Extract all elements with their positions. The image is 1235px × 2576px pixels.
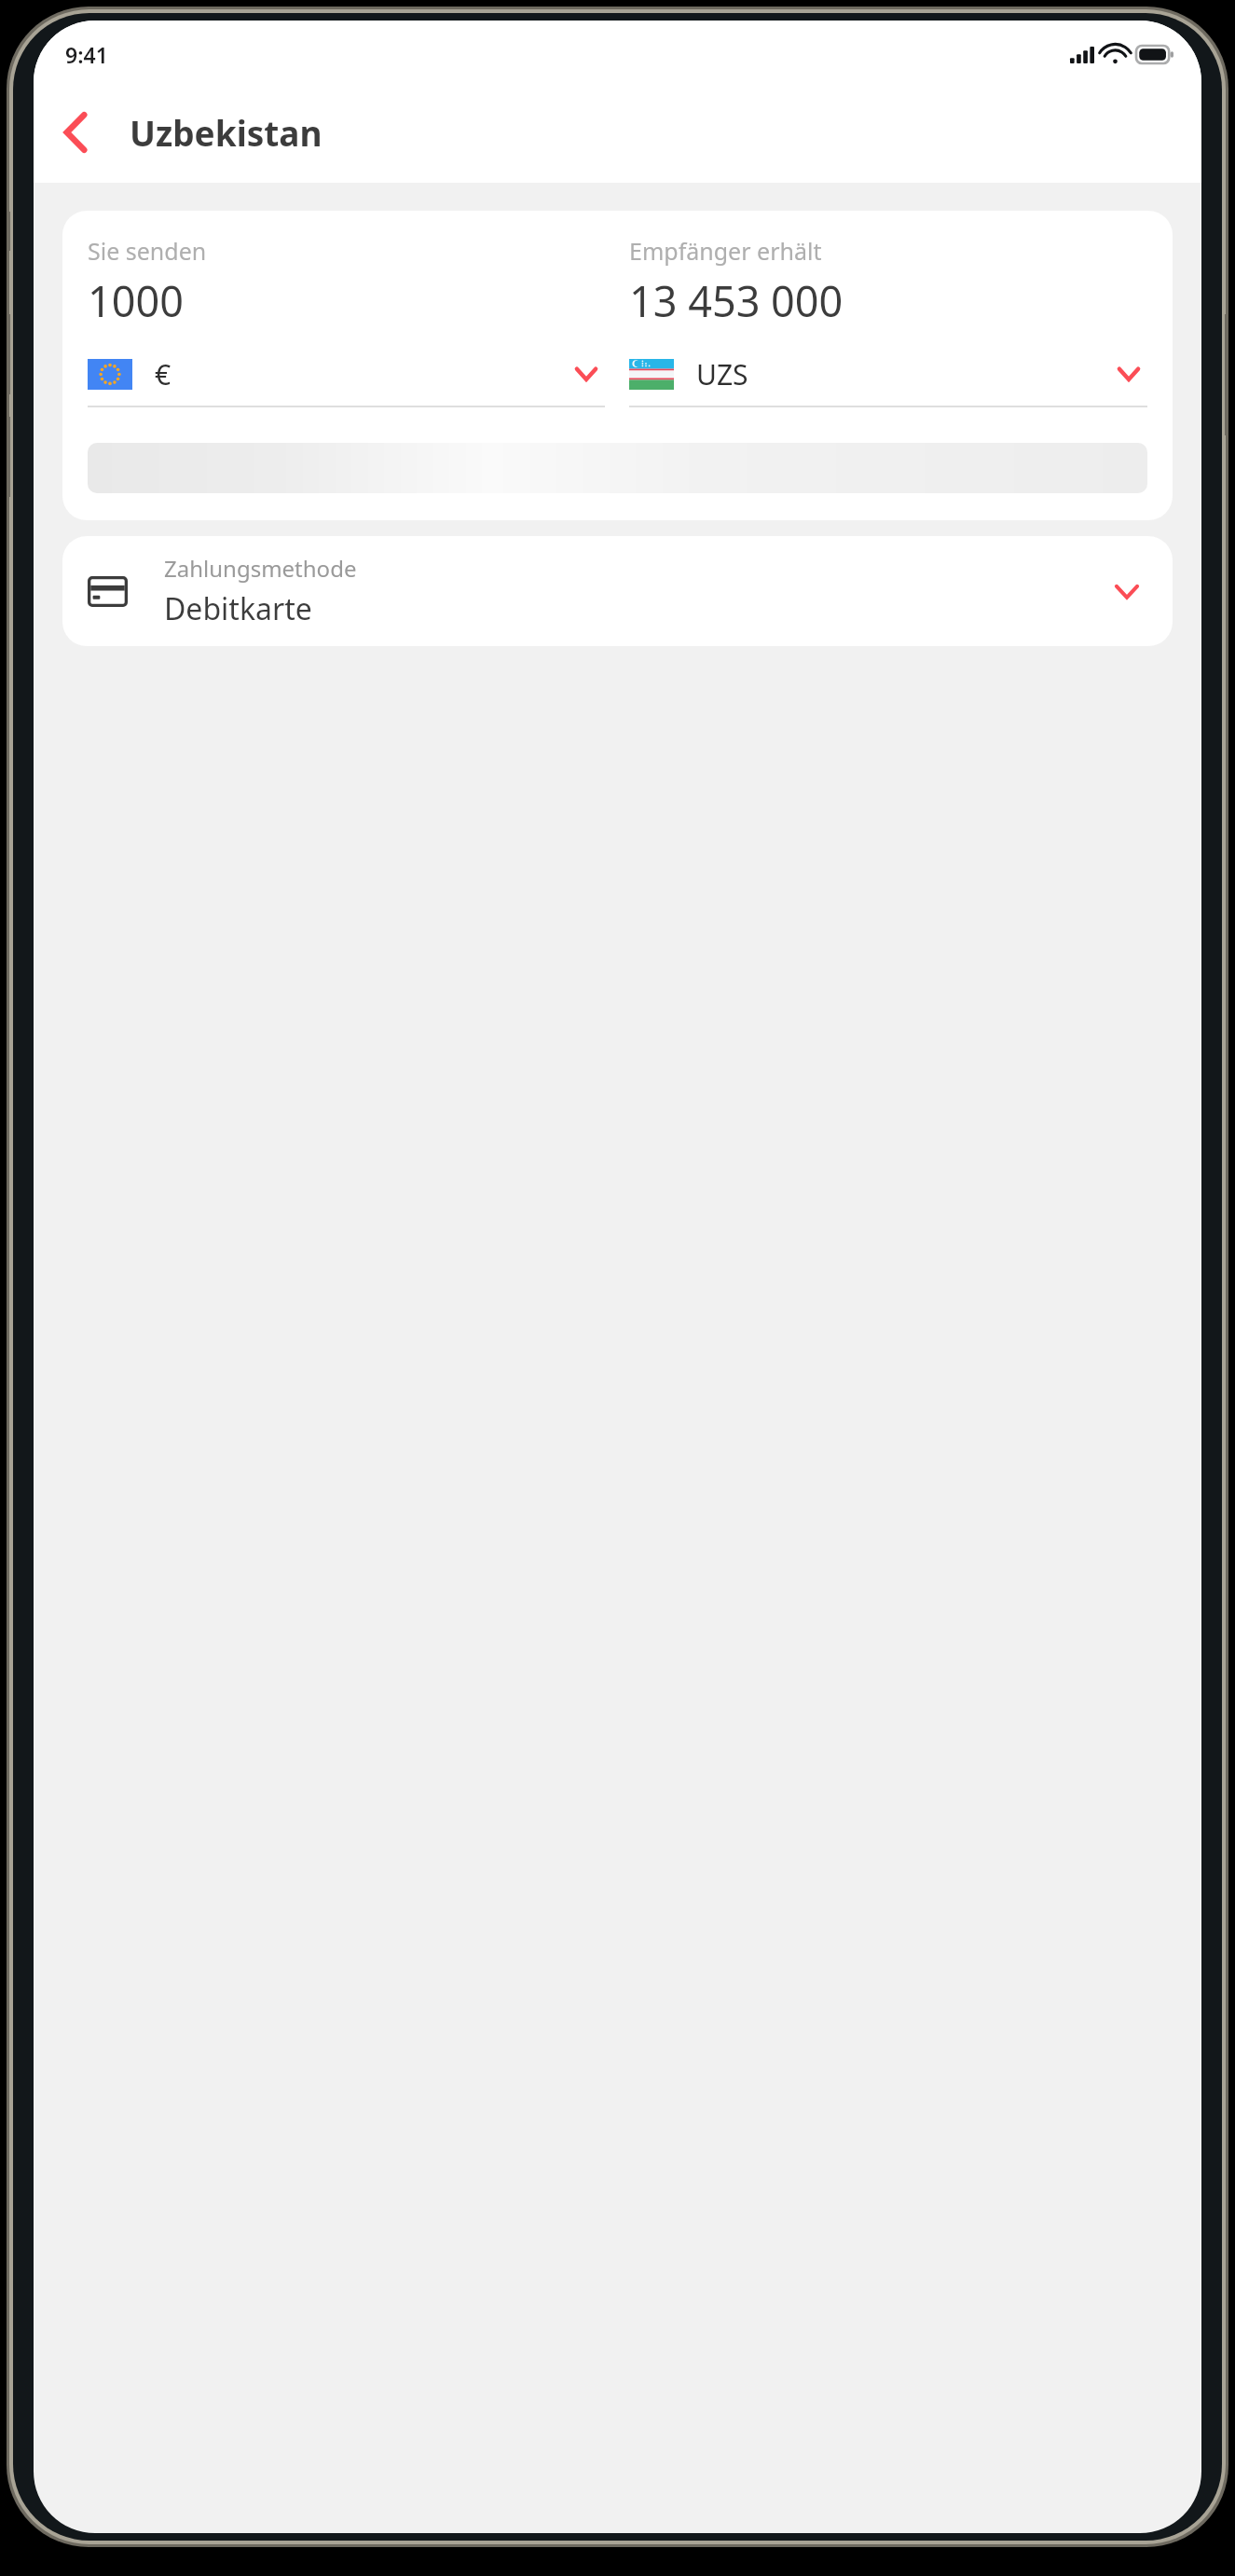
staticText: Uzbekistan [130,109,322,156]
other: Select currency [1110,355,1147,393]
other: Select currency [568,355,605,393]
staticText: Zahlungsmethode [164,553,357,584]
button[interactable]: € [88,348,605,407]
button[interactable]: Back [47,103,104,161]
staticText: Empfänger erhält [629,235,822,267]
button[interactable]: UZS [629,348,1147,407]
staticText: UZS [696,355,1110,393]
staticText: 9:41 [65,40,108,69]
staticText: 1000 [88,272,184,329]
other: Change payment method [1106,571,1147,612]
staticText: Sie senden [88,235,207,267]
staticText: 13 453 000 [629,272,844,329]
staticText: € [155,355,568,393]
button[interactable]: Zahlungsmethode [62,536,1173,646]
staticText: Debitkarte [164,588,312,629]
